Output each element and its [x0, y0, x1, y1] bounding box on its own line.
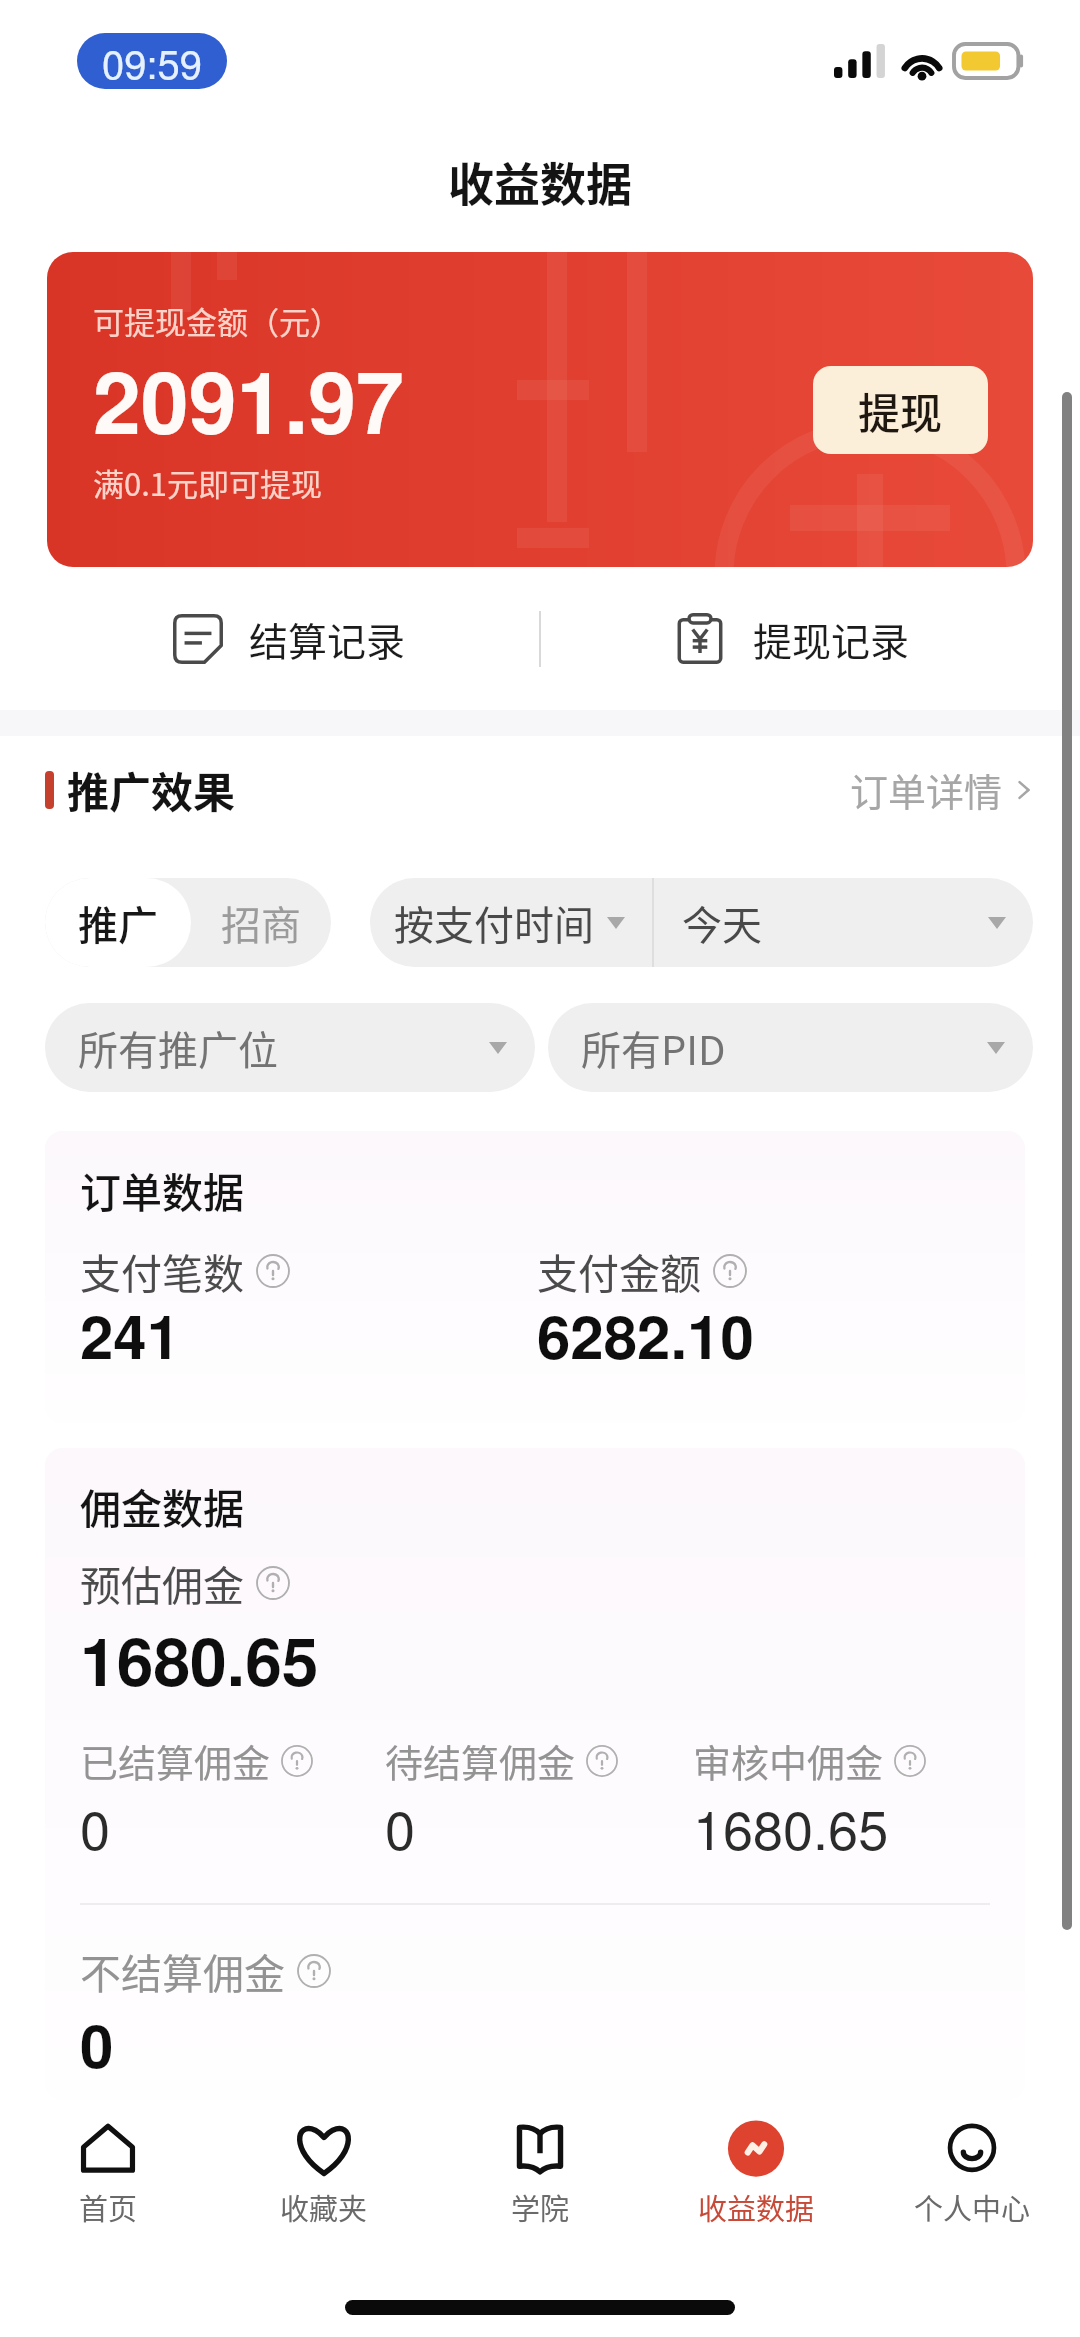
staticText: 可提现金额（元） [93, 298, 341, 343]
staticText: 已结算佣金 [80, 1733, 271, 1788]
staticText: 0 [80, 1788, 111, 1865]
staticText: 收藏夹 [280, 2186, 368, 2228]
button[interactable]: 收益数据 [648, 2100, 864, 2265]
staticText: 首页 [79, 2186, 138, 2228]
staticText: 满0.1元即可提现 [93, 460, 323, 505]
staticText: 结算记录 [249, 611, 406, 667]
staticText: 推广效果 [67, 759, 236, 820]
staticText: 支付金额 [537, 1241, 701, 1300]
staticText: 待结算佣金 [385, 1733, 576, 1788]
staticText: 09:59 [102, 33, 203, 89]
staticText: 收益数据 [448, 148, 632, 215]
button[interactable]: 招商 [191, 878, 331, 967]
staticText: 收益数据 [698, 2186, 815, 2228]
staticText: 个人中心 [914, 2186, 1031, 2228]
button[interactable]: 提现 Withdraw [813, 366, 988, 454]
staticText: 预估佣金 [80, 1553, 244, 1612]
staticText: 招商 [221, 894, 301, 952]
staticText: 提现记录 [753, 611, 910, 667]
button[interactable]: 今天 [654, 878, 1033, 967]
button[interactable]: 个人中心 [864, 2100, 1080, 2265]
staticText: 提现 [858, 380, 943, 441]
staticText: 支付笔数 [80, 1241, 244, 1300]
staticText: 不结算佣金 [80, 1941, 285, 2000]
staticText: 所有推广位 [78, 1019, 278, 1077]
staticText: 1680.65 [80, 1612, 319, 1707]
staticText: 订单详情 [850, 762, 1003, 817]
button[interactable]: 订单详情 [850, 762, 1038, 817]
button[interactable]: 学院 [432, 2100, 648, 2265]
staticText: 0 [385, 1788, 416, 1865]
staticText: 按支付时间 [394, 894, 594, 952]
staticText: 0 [80, 2000, 114, 2086]
staticText: 审核中佣金 [693, 1733, 884, 1788]
button[interactable]: 收藏夹 [216, 2100, 432, 2265]
button[interactable]: 按支付时间 [370, 878, 652, 967]
staticText: 1680.65 [693, 1788, 889, 1865]
staticText: 今天 [682, 894, 762, 952]
staticText: 佣金数据 [80, 1476, 244, 1535]
button[interactable]: 提现记录 [541, 567, 1080, 710]
staticText: 学院 [511, 2186, 570, 2228]
button[interactable]: 首页 [0, 2100, 216, 2265]
button[interactable]: 推广 [45, 878, 191, 967]
staticText: 2091.97 [93, 337, 404, 460]
staticText: 6282.10 [537, 1291, 754, 1377]
staticText: 订单数据 [80, 1160, 244, 1219]
staticText: 所有PID [581, 1019, 726, 1077]
staticText: 推广 [78, 894, 158, 952]
button[interactable]: 所有推广位 [45, 1003, 535, 1092]
button[interactable]: 所有PID [548, 1003, 1033, 1092]
button[interactable]: 结算记录 [0, 567, 539, 710]
staticText: 241 [80, 1291, 181, 1377]
